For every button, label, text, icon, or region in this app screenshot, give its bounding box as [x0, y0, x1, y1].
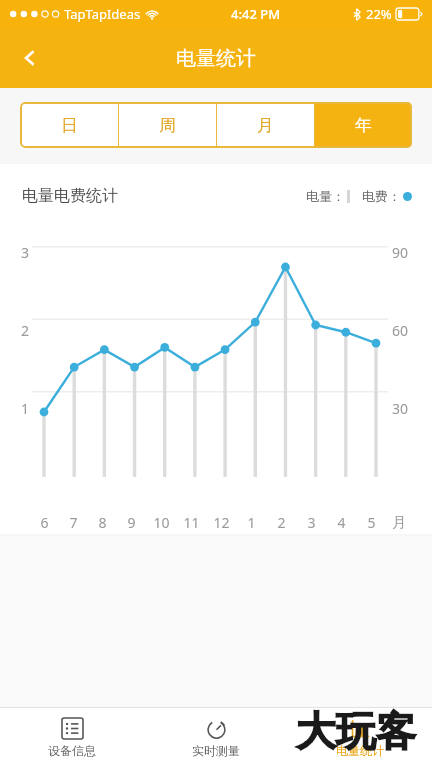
- button[interactable]: Back: [6, 34, 54, 82]
- button[interactable]: 月: [217, 102, 314, 148]
- button[interactable]: 实时测量: [144, 708, 288, 768]
- staticText: 2: [277, 513, 286, 532]
- button[interactable]: 电量统计: [288, 708, 432, 768]
- staticText: 日: [61, 115, 78, 136]
- staticText: 60: [392, 321, 409, 340]
- staticText: 1: [247, 513, 256, 532]
- staticText: 6: [40, 513, 49, 532]
- staticText: 10: [153, 513, 170, 532]
- staticText: 4:42 PM: [231, 5, 281, 23]
- staticText: 8: [98, 513, 107, 532]
- staticText: 电量电费统计: [22, 186, 118, 206]
- staticText: 年: [355, 115, 372, 136]
- staticText: 3: [307, 513, 316, 532]
- staticText: 设备信息: [48, 743, 96, 758]
- staticText: TapTapIdeas: [64, 5, 141, 23]
- staticText: 3: [21, 243, 30, 262]
- staticText: 30: [392, 399, 409, 418]
- button[interactable]: 年: [315, 102, 412, 148]
- staticText: 月: [392, 514, 406, 532]
- staticText: 电量：: [306, 188, 345, 204]
- staticText: 周: [159, 115, 176, 136]
- staticText: 90: [392, 243, 409, 262]
- staticText: 月: [257, 115, 274, 136]
- staticText: 22%: [366, 5, 392, 23]
- staticText: 电量统计: [176, 46, 256, 71]
- staticText: 2: [21, 321, 30, 340]
- staticText: 实时测量: [192, 743, 240, 758]
- button[interactable]: 周: [119, 102, 216, 148]
- staticText: 5: [367, 513, 376, 532]
- staticText: 大玩客: [296, 706, 416, 756]
- staticText: 12: [213, 513, 230, 532]
- staticText: 电费：: [362, 188, 401, 204]
- staticText: 9: [127, 513, 136, 532]
- staticText: 电量统计: [336, 743, 384, 758]
- staticText: 4: [337, 513, 346, 532]
- button[interactable]: 设备信息: [0, 708, 144, 768]
- staticText: 11: [183, 513, 200, 532]
- staticText: 7: [69, 513, 78, 532]
- staticText: 1: [21, 399, 30, 418]
- button[interactable]: 日: [20, 102, 118, 148]
